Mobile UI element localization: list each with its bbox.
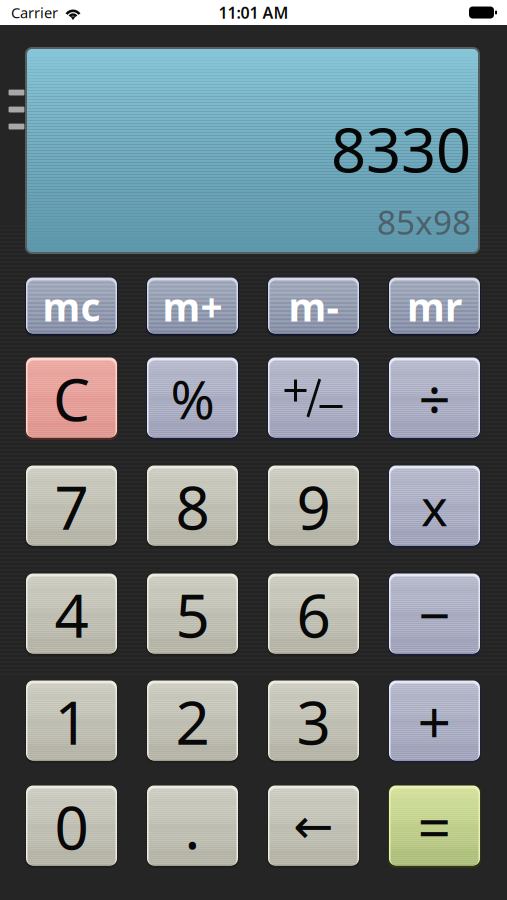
staticText: 2 <box>175 682 209 761</box>
staticText: . <box>184 787 200 865</box>
staticText: + <box>417 682 451 760</box>
button[interactable]: 8 <box>146 465 239 548</box>
button[interactable]: Percent <box>146 357 239 440</box>
button[interactable]: Multiply <box>388 465 481 548</box>
staticText: m- <box>288 281 338 332</box>
button[interactable]: 3 <box>267 680 360 763</box>
button[interactable]: Memory recall <box>388 277 481 336</box>
staticText: 6 <box>296 575 330 654</box>
button[interactable]: 6 <box>267 573 360 656</box>
button[interactable]: Equals <box>388 785 481 868</box>
staticText: = <box>417 787 451 865</box>
staticText: mr <box>407 281 462 332</box>
staticText: 8 <box>175 467 209 546</box>
staticText: Carrier <box>11 3 58 22</box>
staticText: 85x98 <box>377 200 471 244</box>
button[interactable]: 4 <box>25 573 118 656</box>
staticText: 0 <box>54 787 88 866</box>
staticText: 7 <box>54 467 88 546</box>
staticText: x <box>421 473 448 540</box>
button[interactable]: 2 <box>146 680 239 763</box>
button[interactable]: Divide <box>388 357 481 440</box>
button[interactable]: 0 <box>25 785 118 868</box>
button[interactable]: Decimal point <box>146 785 239 868</box>
staticText: 1 <box>54 682 88 761</box>
staticText: − <box>418 577 450 652</box>
staticText: 5 <box>175 575 209 654</box>
staticText: 9 <box>296 467 330 546</box>
staticText: m+ <box>162 281 222 332</box>
staticText: ÷ <box>418 361 450 436</box>
staticText: % <box>170 363 214 434</box>
staticText: ← <box>293 799 333 854</box>
button[interactable]: Minus <box>388 573 481 656</box>
staticText: 3 <box>296 682 330 761</box>
button[interactable]: Backspace <box>267 785 360 868</box>
button[interactable]: Memory add <box>146 277 239 336</box>
button[interactable]: 5 <box>146 573 239 656</box>
button[interactable]: Plus <box>388 680 481 763</box>
staticText: mc <box>42 281 100 332</box>
staticText: 4 <box>54 575 88 654</box>
button[interactable]: Memory clear <box>25 277 118 336</box>
button[interactable]: Clear <box>25 357 118 440</box>
staticText: 11:01 AM <box>218 2 288 23</box>
button[interactable]: Plus minus <box>267 357 360 440</box>
staticText: C <box>53 359 90 437</box>
button[interactable]: Memory subtract <box>267 277 360 336</box>
staticText: 8330 <box>331 108 471 189</box>
button[interactable]: 7 <box>25 465 118 548</box>
button[interactable]: 9 <box>267 465 360 548</box>
button[interactable]: 1 <box>25 680 118 763</box>
